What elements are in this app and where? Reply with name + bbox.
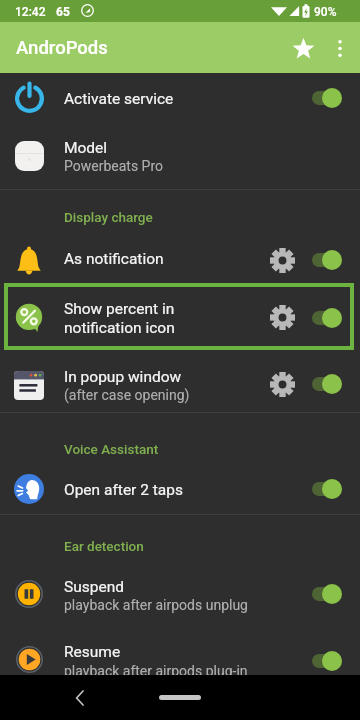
- staticText: Ear detection: [64, 538, 144, 554]
- staticText: 90%: [314, 5, 337, 19]
- staticText: Open after 2 taps: [64, 481, 183, 499]
- staticText: Model: [64, 139, 108, 157]
- button[interactable]: [0, 73, 360, 125]
- staticText: AndroPods: [16, 37, 108, 59]
- button[interactable]: [0, 237, 360, 283]
- staticText: In popup window: [64, 368, 182, 386]
- button[interactable]: Settings: [262, 240, 302, 280]
- button[interactable]: Home: [159, 695, 201, 700]
- staticText: playback after airpods plug-in: [64, 663, 248, 679]
- staticText: Powerbeats Pro: [64, 158, 164, 174]
- staticText: 12:42: [15, 5, 46, 19]
- staticText: (after case opening): [64, 387, 190, 403]
- button[interactable]: [0, 562, 360, 628]
- button[interactable]: [0, 351, 360, 412]
- button[interactable]: [4, 283, 354, 350]
- button[interactable]: [0, 465, 360, 514]
- staticText: 65: [56, 5, 70, 19]
- button[interactable]: Back: [62, 680, 98, 716]
- staticText: As notification: [64, 250, 164, 268]
- staticText: Show percent in: [64, 300, 175, 318]
- staticText: Voice Assistant: [64, 441, 159, 457]
- button[interactable]: More options: [320, 28, 360, 68]
- button[interactable]: Favorite: [281, 26, 325, 70]
- button[interactable]: Settings: [262, 297, 302, 337]
- button[interactable]: [0, 628, 360, 694]
- button[interactable]: [0, 125, 360, 189]
- staticText: Display charge: [64, 209, 153, 225]
- staticText: Activate service: [64, 90, 174, 108]
- staticText: notification icon: [64, 319, 175, 337]
- staticText: Resume: [64, 643, 121, 661]
- staticText: playback after airpods unplug: [64, 597, 248, 613]
- button[interactable]: Settings: [262, 364, 302, 404]
- staticText: Suspend: [64, 578, 124, 596]
